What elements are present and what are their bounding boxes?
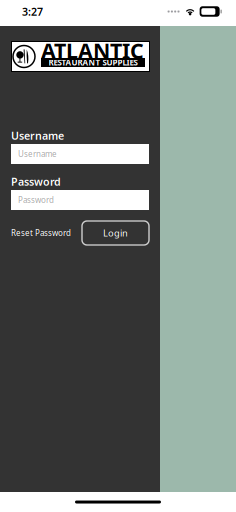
- staticText: 3:27: [22, 4, 43, 19]
- staticText: RESTAURANT SUPPLIES: [48, 57, 137, 68]
- staticText: Username: [18, 149, 57, 159]
- button[interactable]: Reset Password: [11, 221, 71, 245]
- staticText: Password: [18, 195, 54, 205]
- staticText: Login: [103, 227, 128, 239]
- staticText: ATLANTIC: [41, 36, 144, 65]
- staticText: Username: [11, 128, 64, 143]
- staticText: Password: [11, 174, 61, 189]
- staticText: Reset Password: [11, 228, 71, 238]
- button[interactable]: Login: [82, 221, 149, 245]
